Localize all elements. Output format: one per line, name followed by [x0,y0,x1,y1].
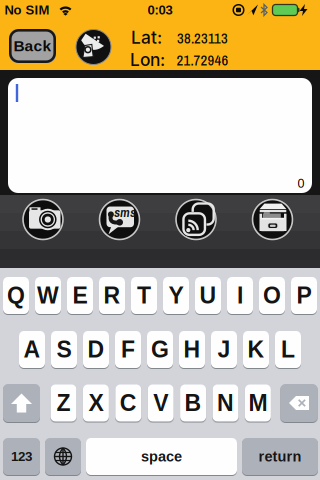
button[interactable]: B [180,384,206,421]
button[interactable]: Back [9,29,56,63]
staticText: X [88,390,103,416]
button[interactable] [3,384,40,422]
button[interactable]: O [259,277,285,314]
button[interactable]: J [211,331,237,368]
staticText: T [137,283,151,308]
staticText: O [263,283,281,308]
button[interactable]: U [195,277,221,314]
button[interactable]: N [212,384,238,421]
staticText: W [37,283,59,308]
button[interactable] [250,197,294,241]
staticText: F [121,337,135,362]
staticText: P [296,283,311,308]
staticText: 0:03 [147,3,172,17]
staticText: Y [168,283,183,308]
button[interactable] [76,29,111,64]
button[interactable]: A [19,331,45,368]
staticText: A [23,337,40,362]
button[interactable]: Y [163,277,189,314]
staticText: 21.72946 [176,50,228,70]
staticText: M [248,390,267,416]
staticText: R [103,283,120,308]
button[interactable]: return [242,438,318,475]
button[interactable]: 123 [3,438,40,475]
button[interactable]: space [86,438,237,475]
staticText: Z [56,390,70,416]
button[interactable]: D [83,331,109,368]
button[interactable]: F [115,331,141,368]
button[interactable] [280,384,317,422]
staticText: return [258,448,301,465]
staticText: H [183,337,200,362]
staticText: C [120,390,137,416]
button[interactable]: sms [97,197,141,241]
button[interactable]: S [51,331,77,368]
staticText: N [217,390,234,416]
staticText: sms [114,203,136,221]
staticText: E [72,283,87,308]
button[interactable]: G [147,331,173,368]
staticText: D [87,337,104,362]
button[interactable]: E [67,277,93,314]
staticText: U [199,283,216,308]
button[interactable] [21,197,65,241]
staticText: K [247,337,264,362]
staticText: Back [13,37,51,55]
button[interactable]: C [115,384,141,421]
button[interactable]: H [179,331,205,368]
staticText: No SIM [4,3,49,17]
button[interactable]: P [291,277,317,314]
button[interactable]: I [227,277,253,314]
button[interactable]: W [35,277,61,314]
button[interactable]: K [243,331,269,368]
button[interactable]: Q [3,277,29,314]
staticText: Lat: [131,27,162,48]
staticText: space [141,448,182,465]
button[interactable]: T [131,277,157,314]
button[interactable]: X [83,384,109,421]
staticText: 38.23113 [177,28,228,48]
button[interactable]: Z [50,384,76,421]
staticText: V [153,390,168,416]
staticText: L [281,337,295,362]
staticText: I [237,283,243,308]
staticText: 0 [297,176,304,190]
button[interactable]: L [275,331,301,368]
button[interactable] [174,197,218,241]
staticText: Lon: [130,49,165,70]
button[interactable]: R [99,277,125,314]
staticText: G [151,337,169,362]
staticText: J [217,337,230,362]
button[interactable]: V [148,384,174,421]
staticText: S [56,337,71,362]
staticText: B [185,390,202,416]
button[interactable]: M [245,384,271,421]
staticText: 123 [11,449,32,464]
button[interactable] [45,438,81,475]
staticText: Q [7,283,25,308]
